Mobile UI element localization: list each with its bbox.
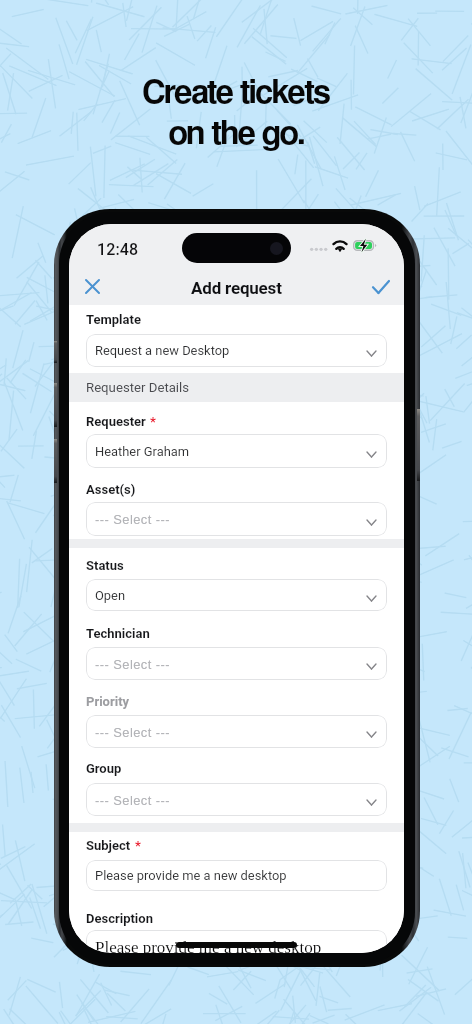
staticText: Asset(s) xyxy=(86,482,136,497)
button[interactable]: --- Select --- xyxy=(86,715,387,748)
staticText: Status xyxy=(86,558,124,573)
button[interactable]: --- Select --- xyxy=(86,647,387,680)
staticText: Template xyxy=(86,312,141,327)
button[interactable]: Please provide me a new desktop xyxy=(86,930,387,953)
staticText: Please provide me a new desktop xyxy=(95,938,322,953)
button[interactable]: Save xyxy=(366,272,396,302)
staticText: Requester Details xyxy=(86,380,190,395)
staticText: Subject xyxy=(86,838,131,853)
staticText: Please provide me a new desktop xyxy=(95,868,287,883)
button[interactable]: Close xyxy=(77,271,107,301)
button[interactable]: Please provide me a new desktop xyxy=(86,860,387,891)
staticText: Description xyxy=(86,911,153,926)
staticText: * xyxy=(150,414,156,429)
staticText: 12:48 xyxy=(97,240,139,259)
staticText: Technician xyxy=(86,626,150,641)
staticText: --- Select --- xyxy=(95,512,171,526)
staticText: Group xyxy=(86,761,122,776)
staticText: --- Select --- xyxy=(95,793,171,807)
staticText: Priority xyxy=(86,694,130,709)
staticText: Heather Graham xyxy=(95,444,190,459)
button[interactable]: Open xyxy=(86,579,387,611)
button[interactable]: --- Select --- xyxy=(86,502,387,536)
staticText: --- Select --- xyxy=(95,657,171,671)
staticText: Open xyxy=(95,588,126,603)
staticText: Requester xyxy=(86,414,146,429)
button[interactable]: Heather Graham xyxy=(86,434,387,468)
staticText: on the go. xyxy=(168,118,304,151)
button[interactable]: --- Select --- xyxy=(86,783,387,816)
staticText: Create tickets xyxy=(142,77,330,110)
staticText: --- Select --- xyxy=(95,725,171,739)
staticText: * xyxy=(135,838,141,853)
staticText: Add request xyxy=(191,278,282,298)
staticText: Request a new Desktop xyxy=(95,343,230,358)
button[interactable]: Request a new Desktop xyxy=(86,334,387,367)
